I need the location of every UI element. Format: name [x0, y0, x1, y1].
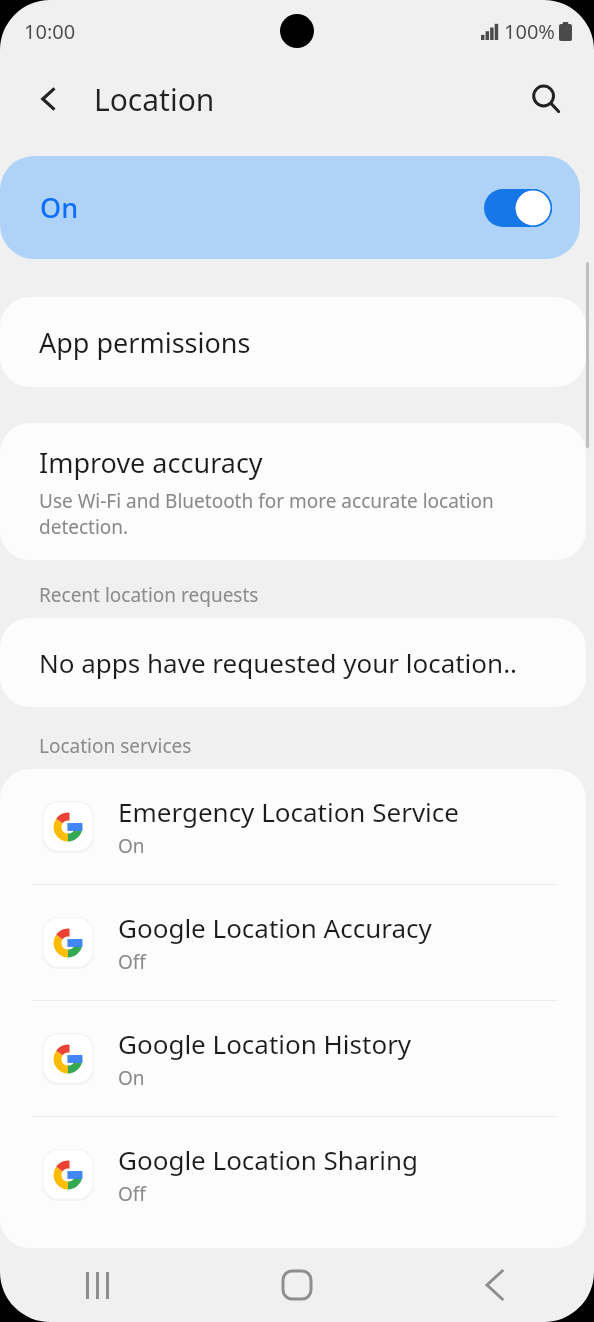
staticText: 10:00: [24, 18, 76, 45]
staticText: Off: [118, 949, 146, 975]
button[interactable]: Back: [396, 1248, 594, 1322]
staticText: Improve accuracy: [39, 444, 263, 481]
staticText: App permissions: [39, 324, 251, 361]
staticText: On: [118, 833, 145, 859]
button[interactable]: Google Location Sharing: [0, 1117, 586, 1232]
staticText: Off: [118, 1181, 146, 1207]
staticText: 100%: [504, 18, 555, 45]
button[interactable]: Google Location History: [0, 1001, 586, 1116]
button[interactable]: On: [0, 156, 580, 259]
button[interactable]: App permissions: [0, 297, 586, 387]
staticText: On: [40, 189, 79, 226]
staticText: Emergency Location Service: [118, 794, 459, 829]
staticText: Google Location Accuracy: [118, 910, 432, 945]
button[interactable]: Improve accuracy: [0, 423, 586, 560]
button[interactable]: Emergency Location Service: [0, 769, 586, 884]
staticText: On: [118, 1065, 145, 1091]
button[interactable]: Home: [198, 1248, 396, 1322]
staticText: Location services: [39, 733, 594, 759]
button[interactable]: Google Location Accuracy: [0, 885, 586, 1000]
button[interactable]: Search: [522, 75, 570, 123]
staticText: Recent location requests: [39, 582, 594, 608]
staticText: No apps have requested your location..: [39, 645, 518, 680]
staticText: Use Wi-Fi and Bluetooth for more accurat…: [39, 488, 556, 540]
staticText: Google Location Sharing: [118, 1142, 419, 1177]
staticText: Google Location History: [118, 1026, 412, 1061]
staticText: Location: [94, 79, 215, 120]
button[interactable]: No apps have requested your location..: [0, 618, 586, 707]
button[interactable]: Back: [26, 76, 72, 122]
button[interactable]: Recents: [0, 1248, 198, 1322]
